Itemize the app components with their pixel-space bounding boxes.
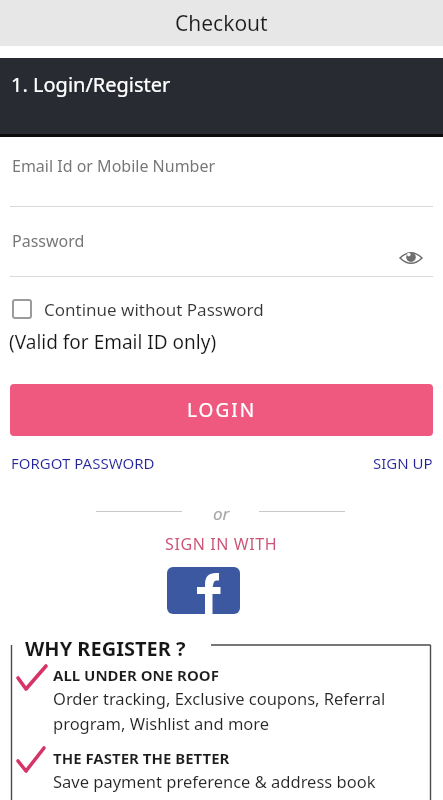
button[interactable]: Email Id or Mobile Number [0,148,443,208]
staticText: Email Id or Mobile Number [12,155,216,177]
staticText: LOGIN [187,397,257,423]
staticText: SIGN IN WITH [165,533,278,553]
staticText: SIGN UP [373,453,433,473]
staticText: Order tracking, Exclusive coupons, Refer… [53,687,386,709]
staticText: Password [12,230,85,252]
staticText: program, Wishlist and more [53,712,270,734]
staticText: 1. Login/Register [11,71,171,98]
staticText: Checkout [175,9,268,38]
staticText: or [213,502,230,522]
button[interactable]: SIGN UP [373,453,433,473]
staticText: (Valid for Email ID only) [9,329,217,355]
staticText: Save payment preference & address book [53,770,376,792]
staticText: Continue without Password [44,298,264,321]
button[interactable]: Continue without Password [0,294,443,324]
button[interactable]: FORGOT PASSWORD [11,453,155,473]
button[interactable]: Password [0,222,443,277]
staticText: FORGOT PASSWORD [11,453,155,473]
staticText: WHY REGISTER ? [25,635,186,662]
staticText: THE FASTER THE BETTER [53,748,230,768]
staticText: ALL UNDER ONE ROOF [53,665,219,685]
button[interactable]: LOGIN [10,384,433,436]
button[interactable] [167,567,240,614]
button[interactable] [399,249,423,267]
